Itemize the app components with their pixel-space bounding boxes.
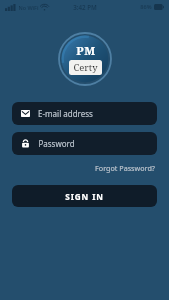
staticText: PM bbox=[76, 43, 96, 59]
staticText: Password bbox=[38, 138, 75, 149]
staticText: E-mail address bbox=[38, 108, 93, 119]
staticText: Forgot Password? bbox=[95, 163, 155, 173]
other: Password bbox=[21, 139, 30, 148]
staticText: SIGN IN bbox=[65, 191, 104, 202]
button[interactable]: Forgot Password? bbox=[93, 161, 157, 175]
button[interactable]: E-mail bbox=[12, 102, 157, 125]
staticText: No WiFi bbox=[18, 4, 39, 11]
other: E-mail bbox=[21, 109, 30, 118]
staticText: 86% bbox=[140, 3, 152, 11]
button[interactable]: Password bbox=[12, 132, 157, 155]
staticText: Certy bbox=[73, 61, 98, 74]
button[interactable]: SIGN IN bbox=[12, 185, 157, 207]
staticText: 3:42 PM bbox=[73, 3, 97, 11]
